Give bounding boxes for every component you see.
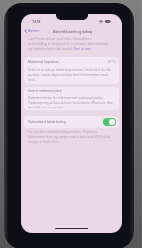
button[interactable]: Optimalisert batterilading (24, 116, 119, 128)
staticText: Dette er et mål på batterikapasiteten i … (28, 68, 116, 82)
staticText: 14:58 (32, 19, 41, 23)
button[interactable]: Evne til maksimal ytelse (24, 87, 119, 110)
staticText: Optimalisert batterilading (28, 120, 66, 124)
staticText: For å redusere batterislitasjen lærer iP… (28, 130, 111, 144)
staticText: Batteri (28, 28, 40, 33)
staticText: Batteriet støtter for tiden normal maksi… (28, 96, 116, 108)
button[interactable]: Optimalisert batterilading (103, 118, 116, 126)
staticText: Evne til maksimal ytelse (28, 89, 62, 93)
staticText: 87 % (108, 60, 116, 64)
staticText: Lad iPhone-en når som helst. Optimaliser… (28, 37, 111, 51)
button[interactable]: Maksimal kapasitet (24, 57, 119, 84)
button[interactable]: Batteri (21, 28, 42, 33)
staticText: Batteritilstand og lading (53, 29, 93, 33)
staticText: Maksimal kapasitet (28, 59, 59, 64)
